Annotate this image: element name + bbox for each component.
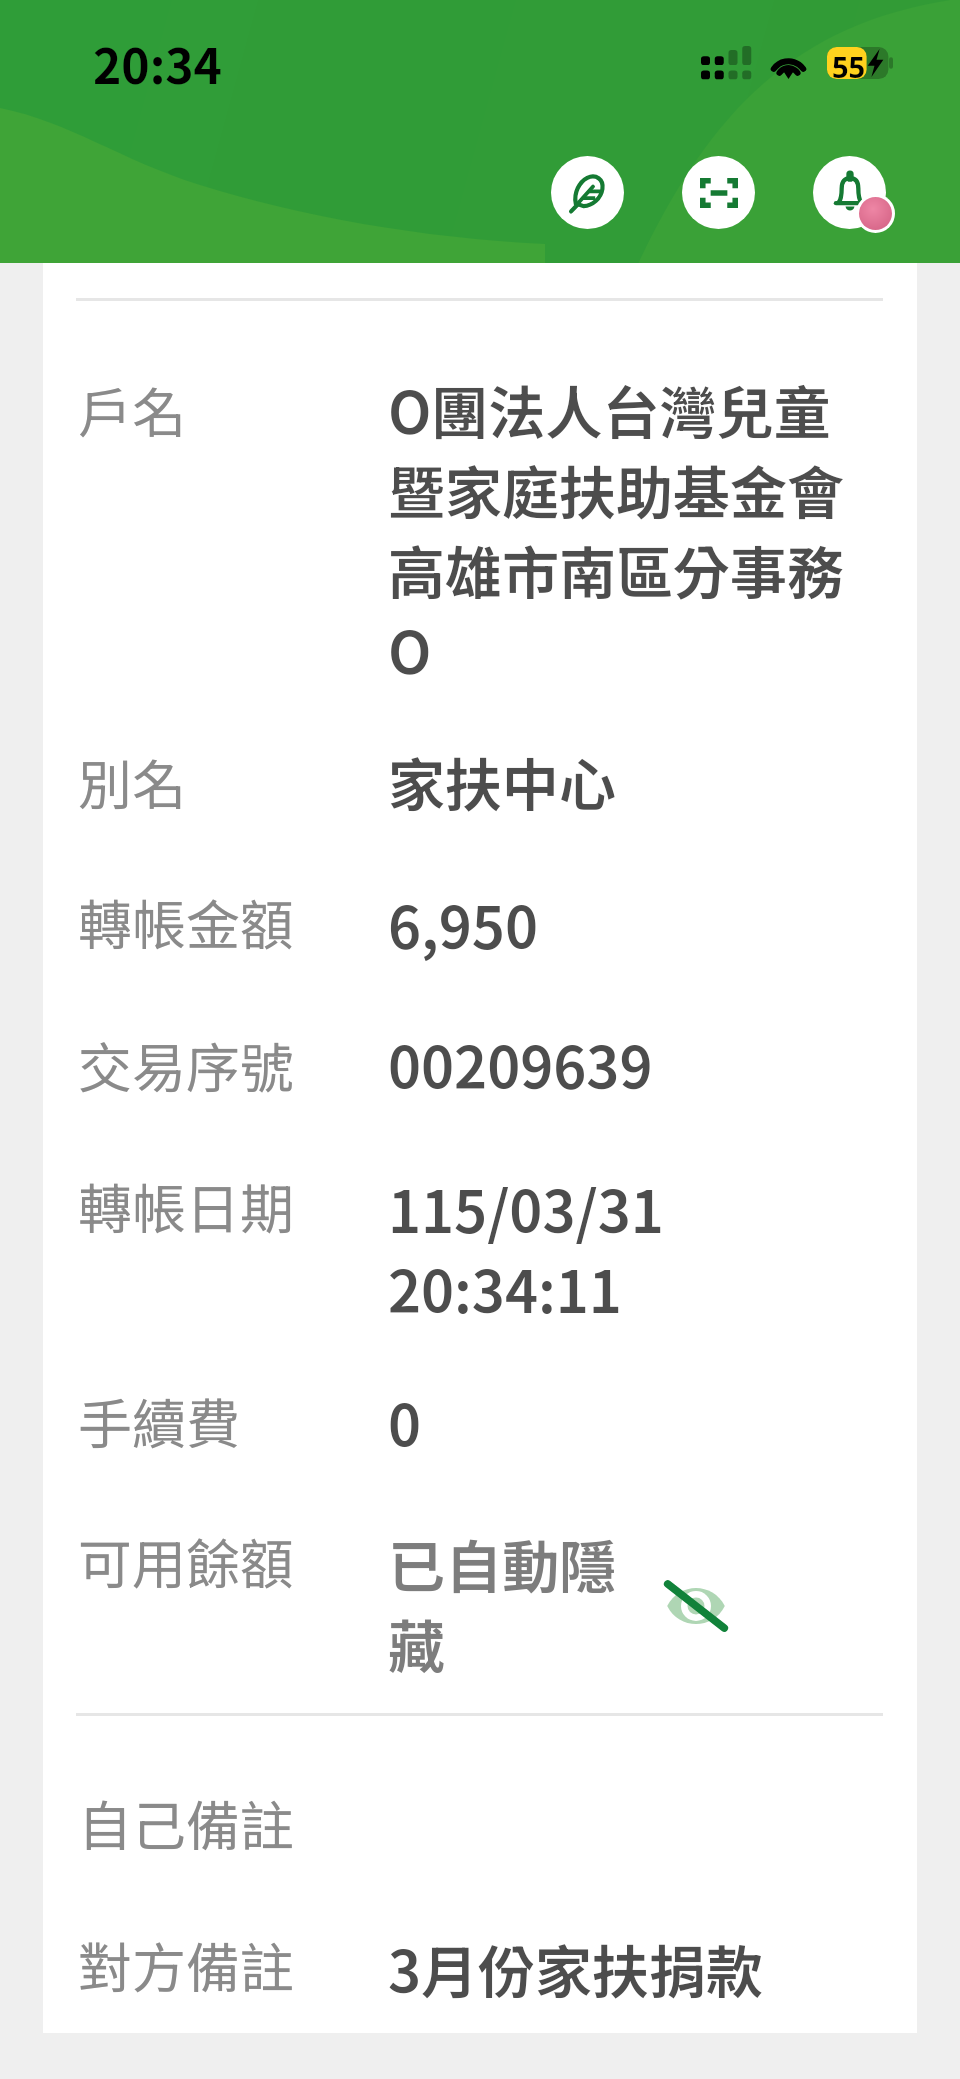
staticText: 55 — [832, 47, 866, 79]
staticText: 已自動隱 藏 — [388, 1522, 616, 1685]
button[interactable]: Notifications — [813, 156, 886, 229]
staticText: 戶名 — [78, 370, 388, 448]
button[interactable]: 可用餘額 — [78, 1521, 878, 1684]
button[interactable]: Write note — [551, 156, 624, 229]
staticText: 20:34 — [93, 28, 222, 98]
staticText: 家扶中心 — [388, 740, 616, 823]
button[interactable]: 對方備註 — [78, 1925, 878, 2008]
staticText: 自己備註 — [78, 1783, 388, 1861]
button[interactable]: 轉帳日期 — [78, 1166, 878, 1329]
staticText: 00209639 — [388, 1023, 653, 1106]
staticText: 對方備註 — [78, 1925, 388, 2003]
staticText: 交易序號 — [78, 1025, 388, 1103]
staticText: 3月份家扶捐款 — [388, 1927, 764, 2010]
button[interactable]: 交易序號 — [78, 1025, 878, 1108]
staticText: O團法人台灣兒童暨家庭扶助基金會高雄市南區分事務O — [388, 368, 878, 691]
staticText: 轉帳日期 — [78, 1166, 388, 1244]
button[interactable]: Scan QR code — [682, 156, 755, 229]
button[interactable]: 轉帳金額 — [78, 882, 878, 965]
staticText: 別名 — [78, 742, 388, 820]
staticText: 115/03/31 20:34:11 — [388, 1167, 664, 1330]
staticText: 6,950 — [388, 883, 538, 966]
button[interactable]: 戶名 — [78, 370, 878, 693]
staticText: 轉帳金額 — [78, 882, 388, 960]
button[interactable]: 自己備註 — [78, 1783, 878, 1861]
staticText: 可用餘額 — [78, 1521, 388, 1599]
staticText: 0 — [388, 1381, 422, 1464]
button[interactable]: 手續費 — [78, 1381, 878, 1464]
button[interactable]: 別名 — [78, 742, 878, 825]
staticText: 手續費 — [78, 1381, 388, 1459]
